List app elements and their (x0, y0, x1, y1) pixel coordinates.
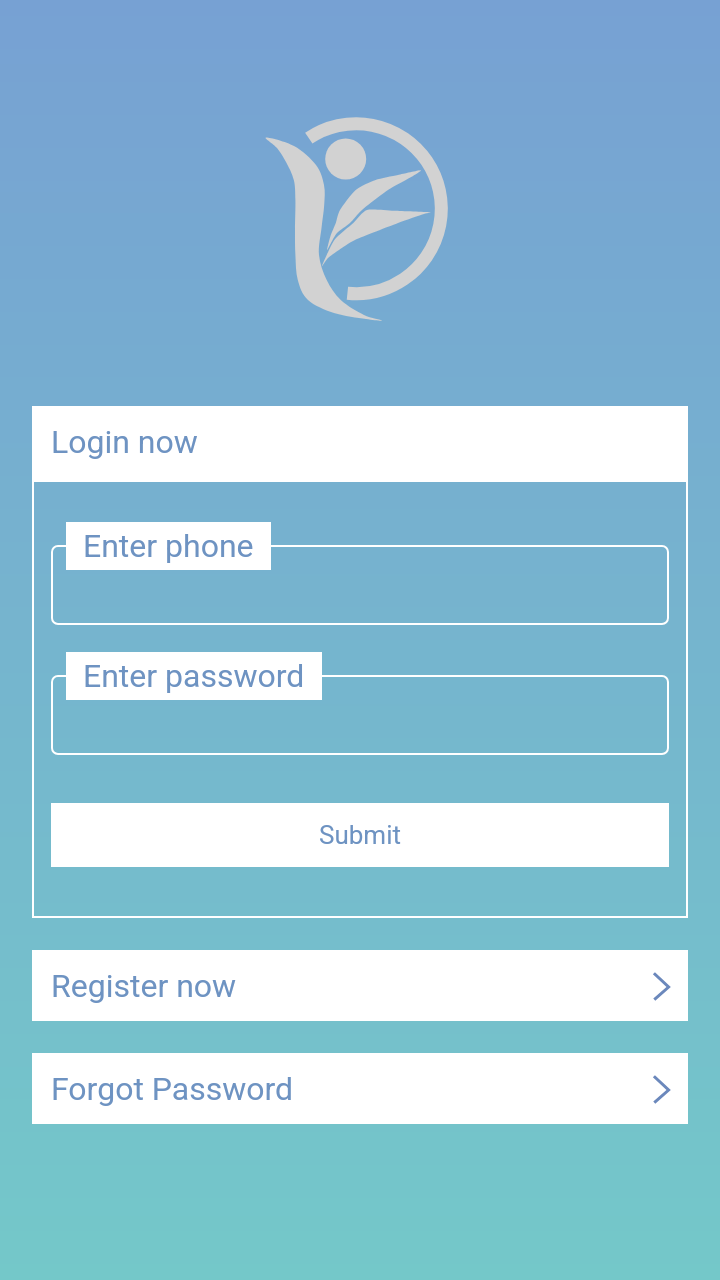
button[interactable]: Submit (51, 803, 669, 867)
button[interactable] (51, 675, 669, 755)
other: Forgot Password (648, 1069, 688, 1109)
staticText: Forgot Password (51, 1070, 667, 1108)
button[interactable]: Register now (32, 950, 688, 1021)
staticText: Enter phone (83, 527, 254, 565)
button[interactable]: Forgot Password (32, 1053, 688, 1124)
staticText: Submit (319, 820, 401, 850)
button[interactable]: Login now (32, 406, 688, 480)
staticText: Login now (51, 423, 198, 461)
other: Register now (648, 966, 688, 1006)
staticText: Register now (51, 967, 667, 1005)
button[interactable] (51, 545, 669, 625)
staticText: Enter password (83, 657, 305, 695)
